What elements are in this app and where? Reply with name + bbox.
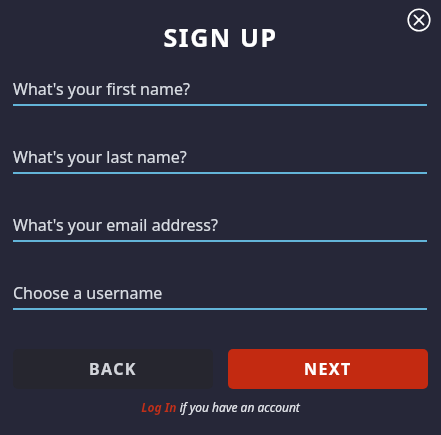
staticText: What's your first name? — [13, 78, 190, 100]
button[interactable]: Close — [407, 8, 431, 32]
staticText: What's your email address? — [13, 214, 218, 236]
staticText: Choose a username — [13, 282, 163, 304]
button[interactable]: What's your email address? — [13, 214, 427, 242]
button[interactable]: What's your last name? — [13, 146, 427, 174]
staticText: BACK — [89, 358, 137, 380]
button[interactable]: Choose a username — [13, 282, 427, 310]
button[interactable]: Log In if you have an account — [141, 399, 300, 415]
staticText: SIGN UP — [163, 20, 278, 54]
staticText: NEXT — [304, 358, 352, 380]
button[interactable]: What's your first name? — [13, 78, 427, 106]
button[interactable]: NEXT — [228, 349, 428, 389]
button[interactable]: BACK — [13, 349, 213, 389]
staticText: What's your last name? — [13, 146, 187, 168]
staticText: Log In if you have an account — [141, 399, 300, 415]
